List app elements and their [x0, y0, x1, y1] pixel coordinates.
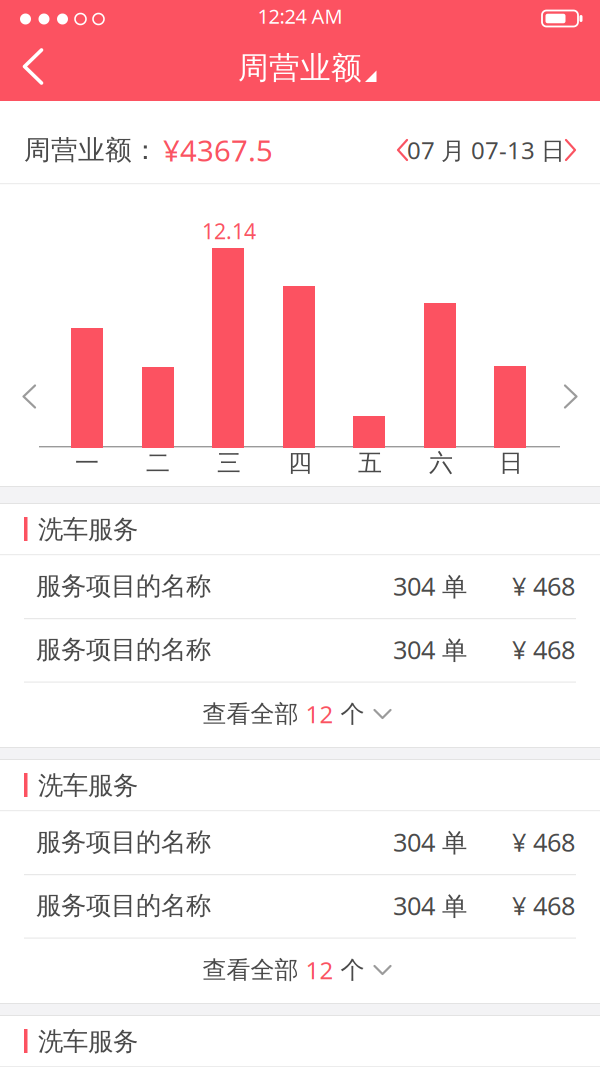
staticText: 304 单: [393, 825, 467, 859]
staticText: 查看全部: [202, 955, 305, 985]
staticText: 服务项目的名称: [36, 634, 211, 665]
staticText: ¥ 468: [512, 569, 575, 603]
button[interactable]: Back: [14, 42, 58, 91]
staticText: 07 月 07-13 日: [407, 134, 565, 166]
staticText: 12:24 AM: [257, 3, 342, 29]
staticText: 周营业额：: [24, 134, 159, 166]
staticText: 一: [75, 448, 99, 478]
staticText: 洗车服务: [38, 514, 138, 545]
staticText: 二: [146, 448, 170, 478]
button[interactable]: Next chart page: [561, 380, 579, 412]
staticText: 12.14: [202, 217, 256, 245]
staticText: 304 单: [393, 569, 467, 603]
staticText: ¥ 468: [512, 825, 575, 859]
button[interactable]: Previous week: [395, 135, 411, 165]
staticText: 服务项目的名称: [36, 826, 211, 857]
staticText: 六: [429, 448, 453, 478]
staticText: 服务项目的名称: [36, 570, 211, 601]
staticText: ¥ 468: [512, 633, 575, 666]
staticText: 洗车服务: [38, 1026, 138, 1057]
staticText: 12: [305, 954, 333, 986]
staticText: ¥ 468: [512, 889, 575, 922]
button[interactable]: 查看全部 12 个: [0, 679, 597, 749]
staticText: 五: [358, 448, 382, 478]
button[interactable]: 查看全部 12 个: [0, 935, 597, 1005]
staticText: 洗车服务: [38, 770, 138, 801]
staticText: 查看全部: [202, 699, 305, 729]
staticText: 三: [217, 448, 241, 478]
staticText: 服务项目的名称: [36, 890, 211, 921]
staticText: ¥4367.5: [163, 130, 273, 169]
staticText: 个: [333, 699, 364, 729]
staticText: 周营业额: [238, 49, 362, 87]
button[interactable]: 周营业额 selector: [220, 44, 380, 92]
button[interactable]: Previous chart page: [21, 380, 39, 412]
staticText: 12: [305, 698, 333, 730]
staticText: 四: [288, 448, 312, 478]
button[interactable]: Next week: [562, 135, 578, 165]
staticText: 日: [499, 448, 523, 478]
staticText: 304 单: [393, 633, 467, 666]
staticText: 304 单: [393, 889, 467, 922]
staticText: 个: [333, 955, 364, 985]
